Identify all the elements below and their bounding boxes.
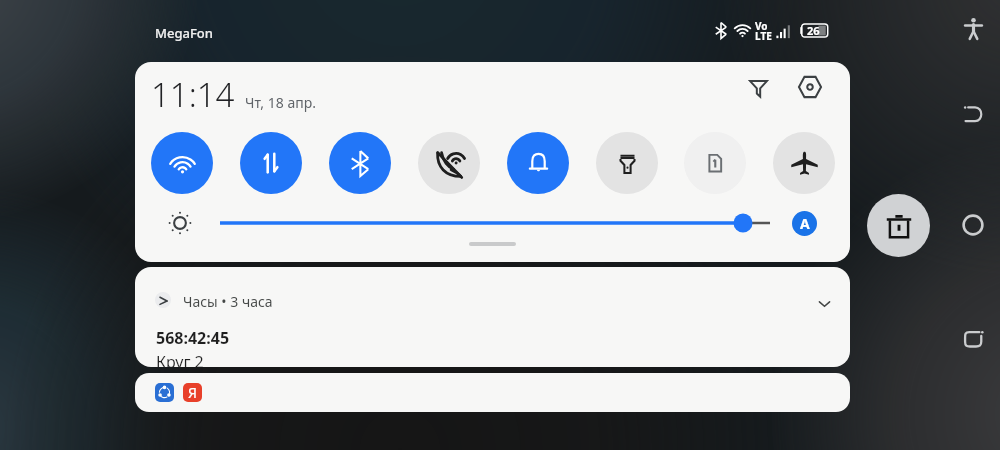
button[interactable]: Do not disturb — [507, 132, 569, 194]
button[interactable]: SIM — [684, 132, 746, 194]
button[interactable]: Share app — [155, 383, 174, 402]
staticText: LTE — [755, 29, 772, 43]
staticText: Vo — [755, 19, 768, 33]
staticText: 568:42:45 — [156, 327, 230, 349]
staticText: Я — [188, 383, 197, 402]
staticText: MegaFon — [155, 24, 213, 42]
button[interactable]: Yandex — [183, 383, 202, 402]
staticText: A — [800, 214, 810, 233]
button[interactable]: Hotspot — [418, 132, 480, 194]
staticText: Чт, 18 апр. — [245, 93, 316, 112]
button[interactable]: Expand — [809, 288, 839, 318]
button[interactable]: Back — [953, 93, 993, 133]
button[interactable]: Airplane mode — [773, 132, 835, 194]
button[interactable]: Recent apps — [953, 318, 993, 358]
button[interactable]: Filter notifications — [736, 65, 780, 109]
button[interactable]: Часы • 3 часа — [135, 267, 850, 367]
button[interactable]: Share app — [135, 373, 850, 412]
staticText: 11:14 — [151, 72, 235, 117]
button[interactable]: Home — [953, 205, 993, 245]
button[interactable]: Clear all notifications — [867, 194, 930, 257]
button[interactable]: Mobile data — [240, 132, 302, 194]
button[interactable]: Settings — [788, 65, 832, 109]
button[interactable]: 11:14 — [151, 72, 316, 117]
button[interactable]: Wi-Fi — [151, 132, 213, 194]
staticText: Круг 2 — [156, 351, 204, 367]
staticText: Часы • 3 часа — [183, 292, 273, 311]
button[interactable]: Accessibility — [953, 8, 993, 48]
button[interactable]: Flashlight — [596, 132, 658, 194]
staticText: 26 — [807, 23, 820, 38]
button[interactable]: Bluetooth — [329, 132, 391, 194]
button[interactable]: Brightness — [215, 213, 770, 233]
button[interactable]: Auto brightness — [792, 211, 817, 236]
